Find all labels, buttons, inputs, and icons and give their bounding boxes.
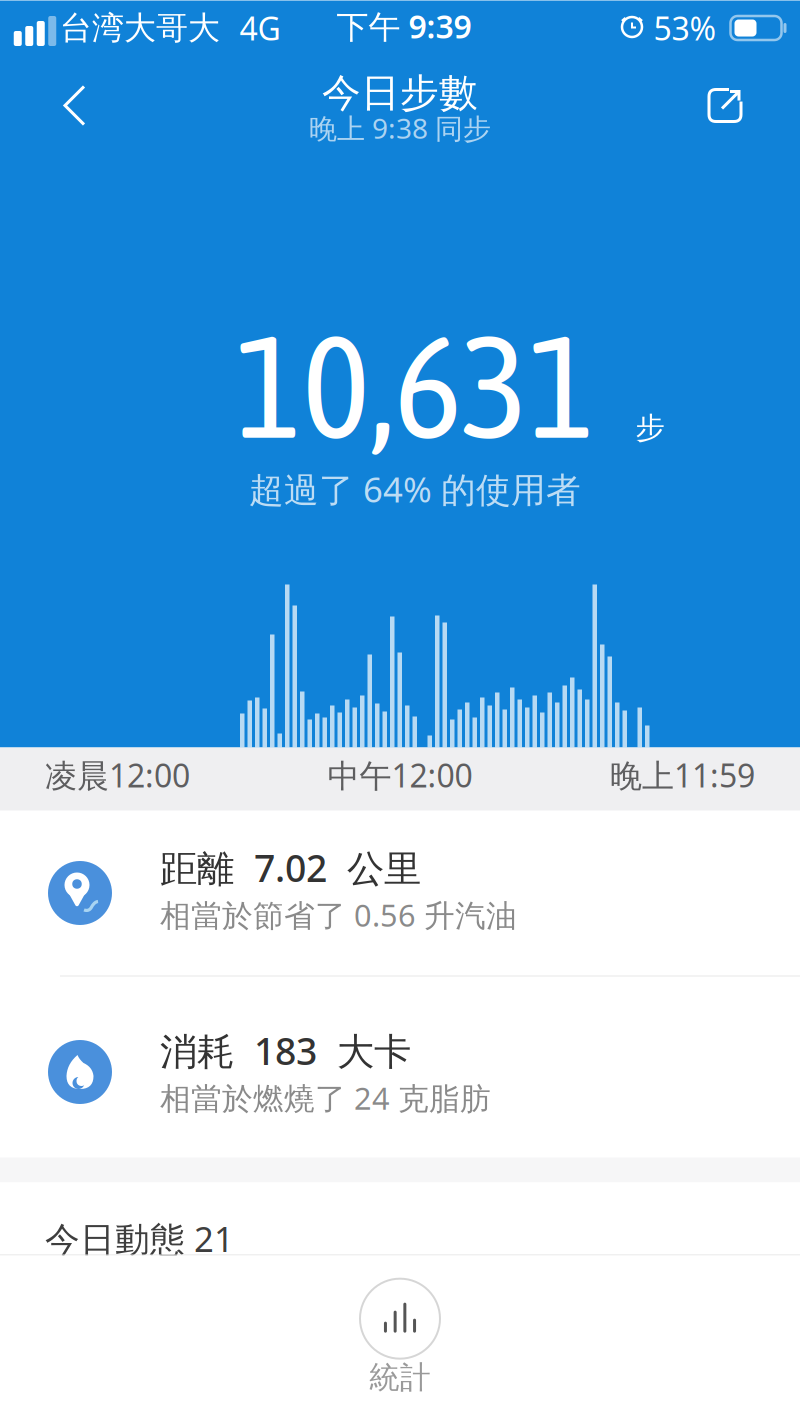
button[interactable]: Back (54, 82, 98, 128)
staticText: 今日步數 (322, 69, 478, 117)
staticText: 步 (635, 410, 664, 446)
staticText: 相當於燃燒了 24 克脂肪 (160, 1077, 491, 1118)
button[interactable]: Share (703, 83, 747, 127)
staticText: 晚上 9:38 同步 (309, 109, 491, 147)
staticText: 下午 9:39 (336, 5, 471, 47)
staticText: 10,631 (235, 304, 595, 468)
staticText: 消耗 183 大卡 (160, 1026, 411, 1075)
staticText: 今日動態 21 (45, 1215, 234, 1261)
staticText: 中午12:00 (327, 754, 472, 796)
staticText: 台湾大哥大 (60, 8, 220, 48)
button[interactable]: 統計 (360, 1279, 440, 1396)
staticText: 4G (239, 7, 280, 49)
staticText: 距離 7.02 公里 (160, 843, 421, 892)
staticText: 晚上11:59 (610, 754, 755, 796)
staticText: 53% (653, 7, 716, 49)
staticText: 凌晨12:00 (45, 754, 190, 796)
staticText: 相當於節省了 0.56 升汽油 (160, 894, 517, 935)
staticText: 統計 (369, 1359, 431, 1396)
staticText: 超過了 64% 的使用者 (249, 466, 581, 512)
